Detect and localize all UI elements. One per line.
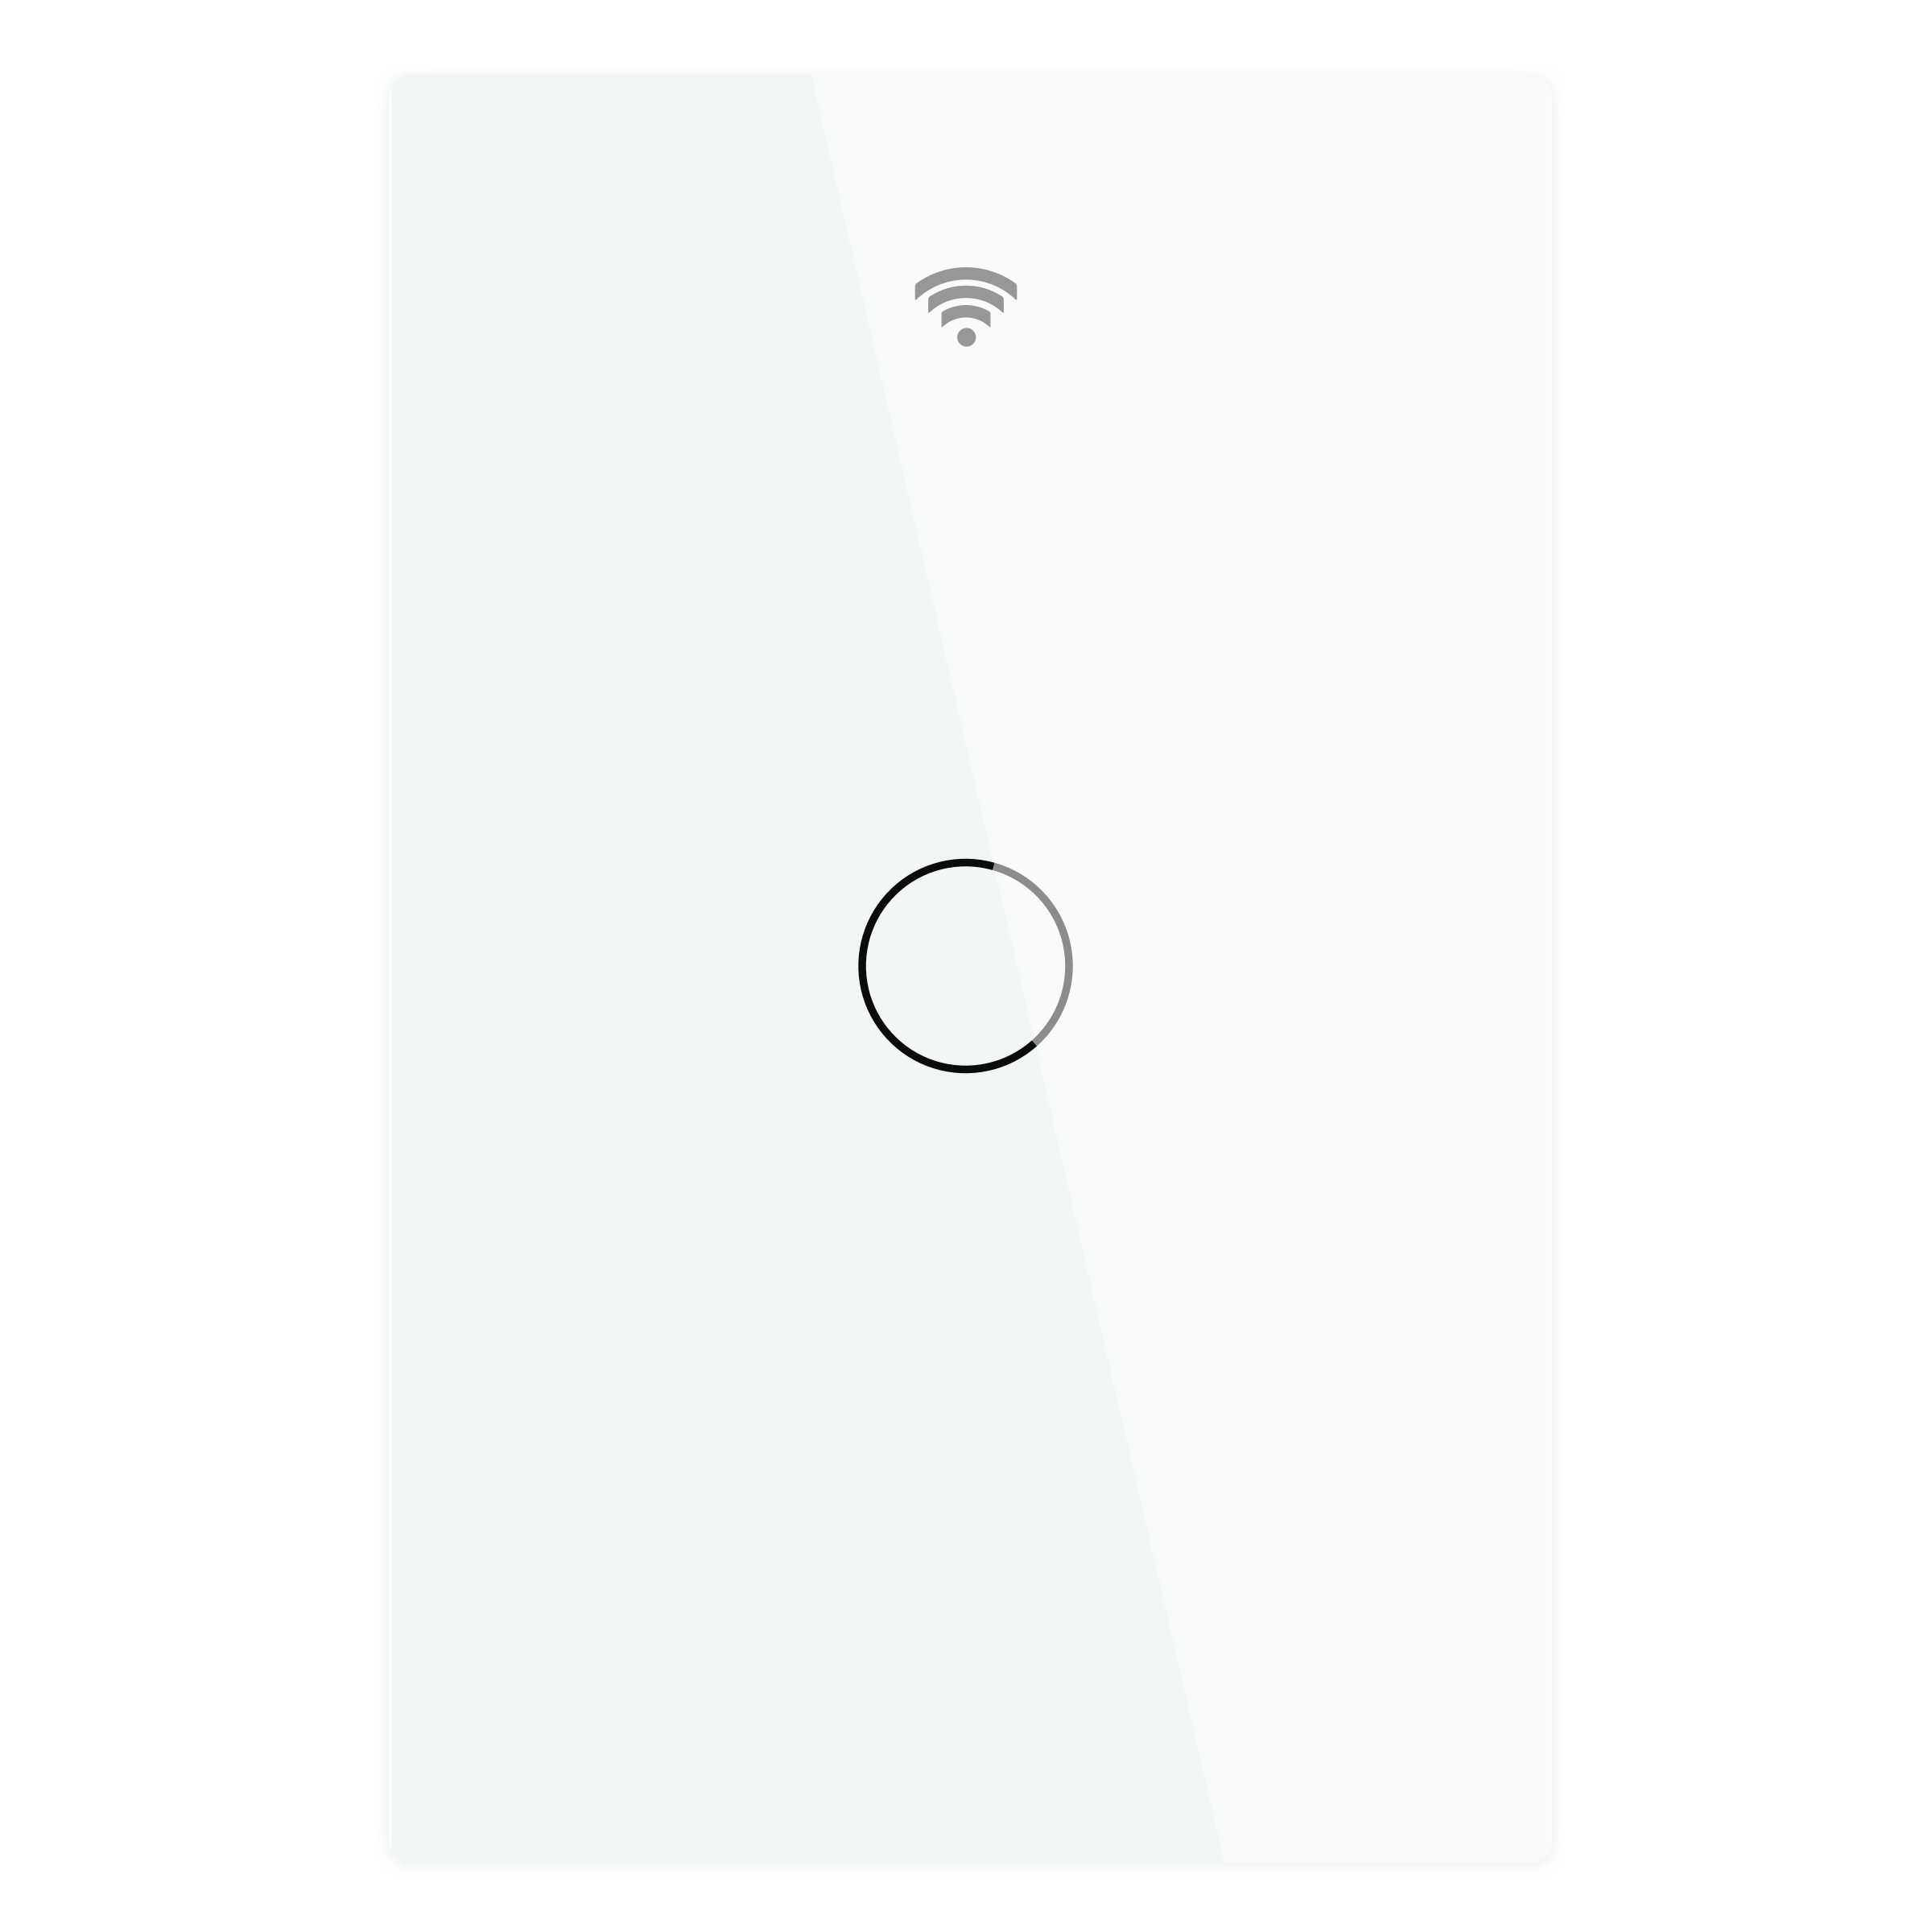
button[interactable]: Toggle light bbox=[862, 863, 1069, 1069]
button[interactable]: Smart switch panel bbox=[389, 76, 1552, 1863]
